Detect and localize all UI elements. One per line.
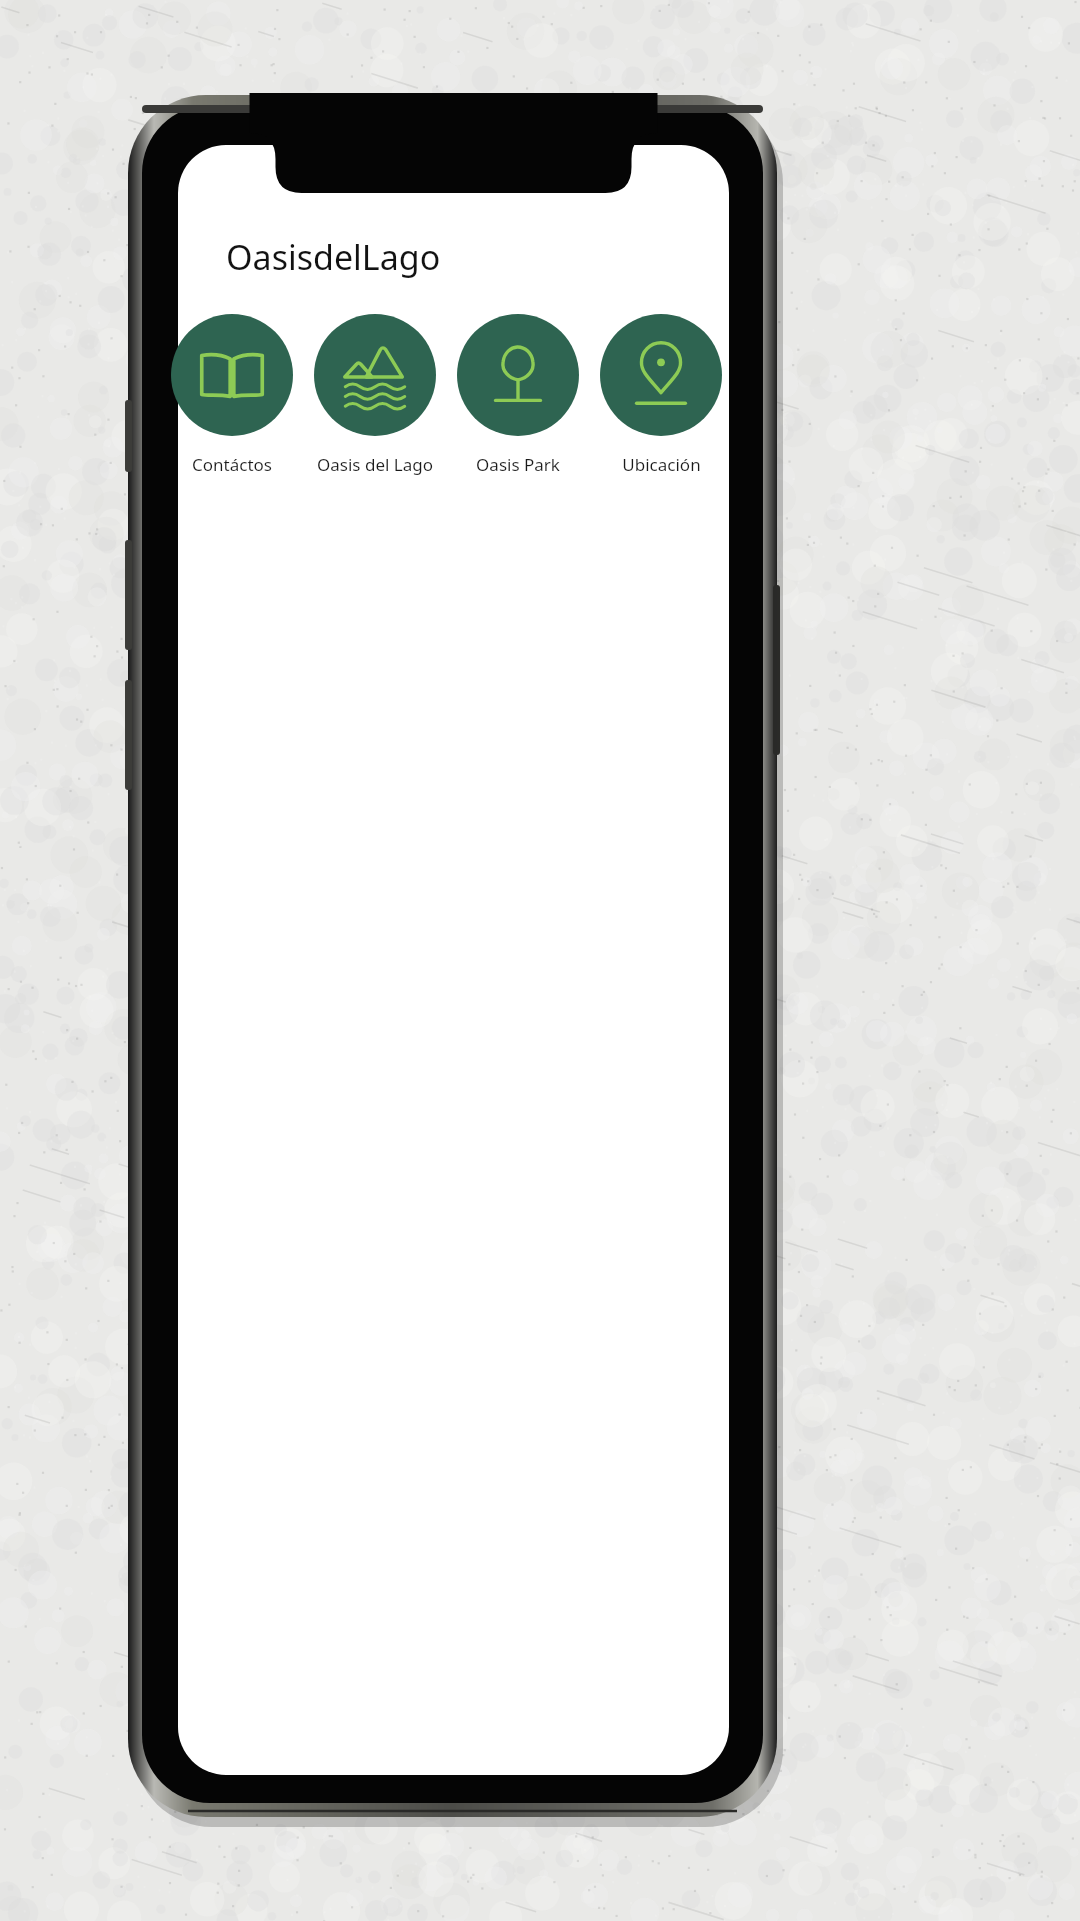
button[interactable]: Ubicación: [600, 314, 722, 476]
button[interactable]: Contáctos: [171, 314, 293, 476]
button[interactable]: Oasis del Lago: [314, 314, 436, 476]
staticText: Contáctos: [192, 453, 272, 476]
staticText: OasisdelLago: [226, 234, 441, 280]
button[interactable]: Oasis Park: [457, 314, 579, 476]
staticText: Oasis Park: [476, 453, 560, 476]
staticText: Ubicación: [622, 453, 701, 476]
staticText: Oasis del Lago: [317, 453, 433, 476]
